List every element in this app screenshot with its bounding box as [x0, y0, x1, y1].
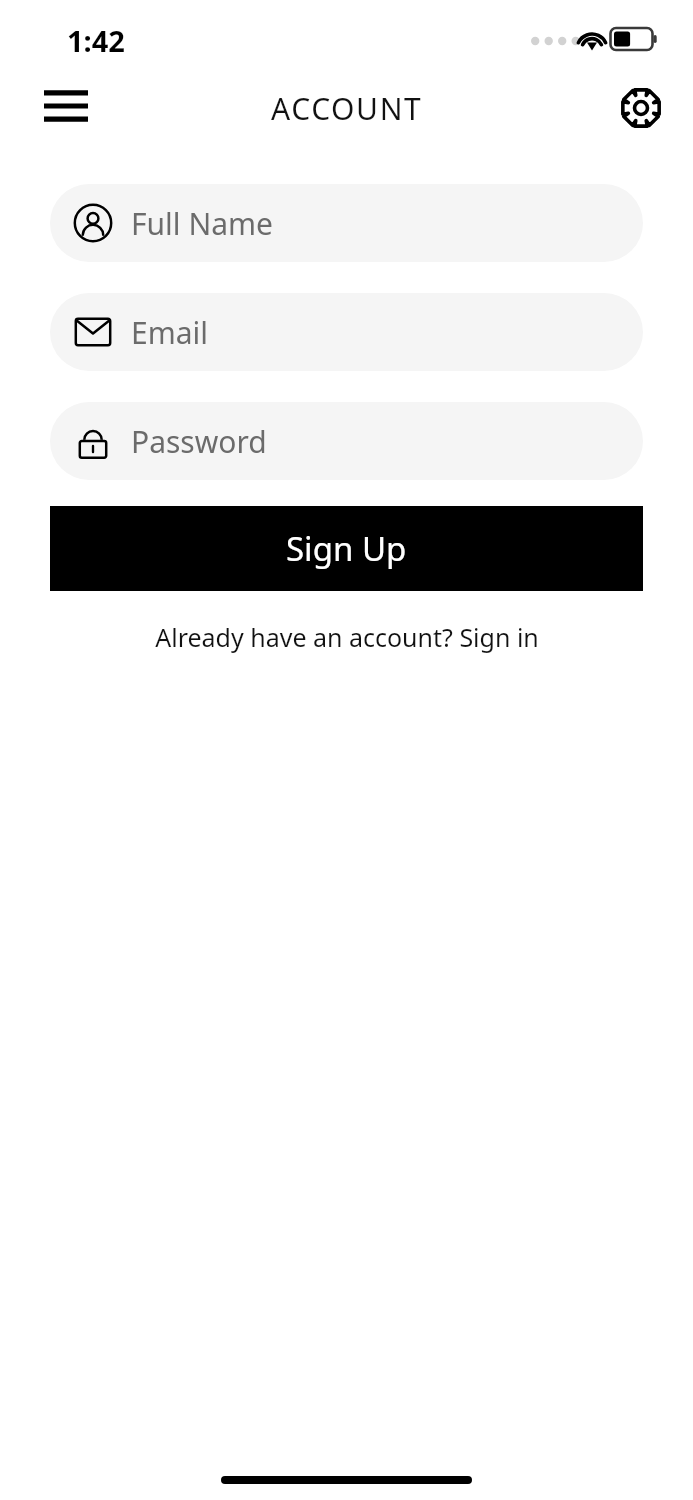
staticText: Sign Up — [286, 526, 407, 571]
staticText: Password — [131, 421, 267, 462]
staticText: Email — [131, 312, 209, 353]
staticText: Already have an account? Sign in — [155, 620, 539, 654]
staticText: 1:42 — [67, 21, 125, 60]
button[interactable]: Menu — [28, 68, 104, 144]
staticText: Full Name — [131, 203, 273, 244]
button[interactable]: Password — [50, 402, 643, 480]
staticText: ACCOUNT — [271, 88, 423, 129]
button[interactable]: Already have an account? Sign in — [143, 614, 551, 660]
button[interactable]: Email — [50, 293, 643, 371]
button[interactable]: Full Name — [50, 184, 643, 262]
button[interactable]: Sign Up — [50, 506, 643, 591]
button[interactable]: Settings — [605, 72, 677, 144]
